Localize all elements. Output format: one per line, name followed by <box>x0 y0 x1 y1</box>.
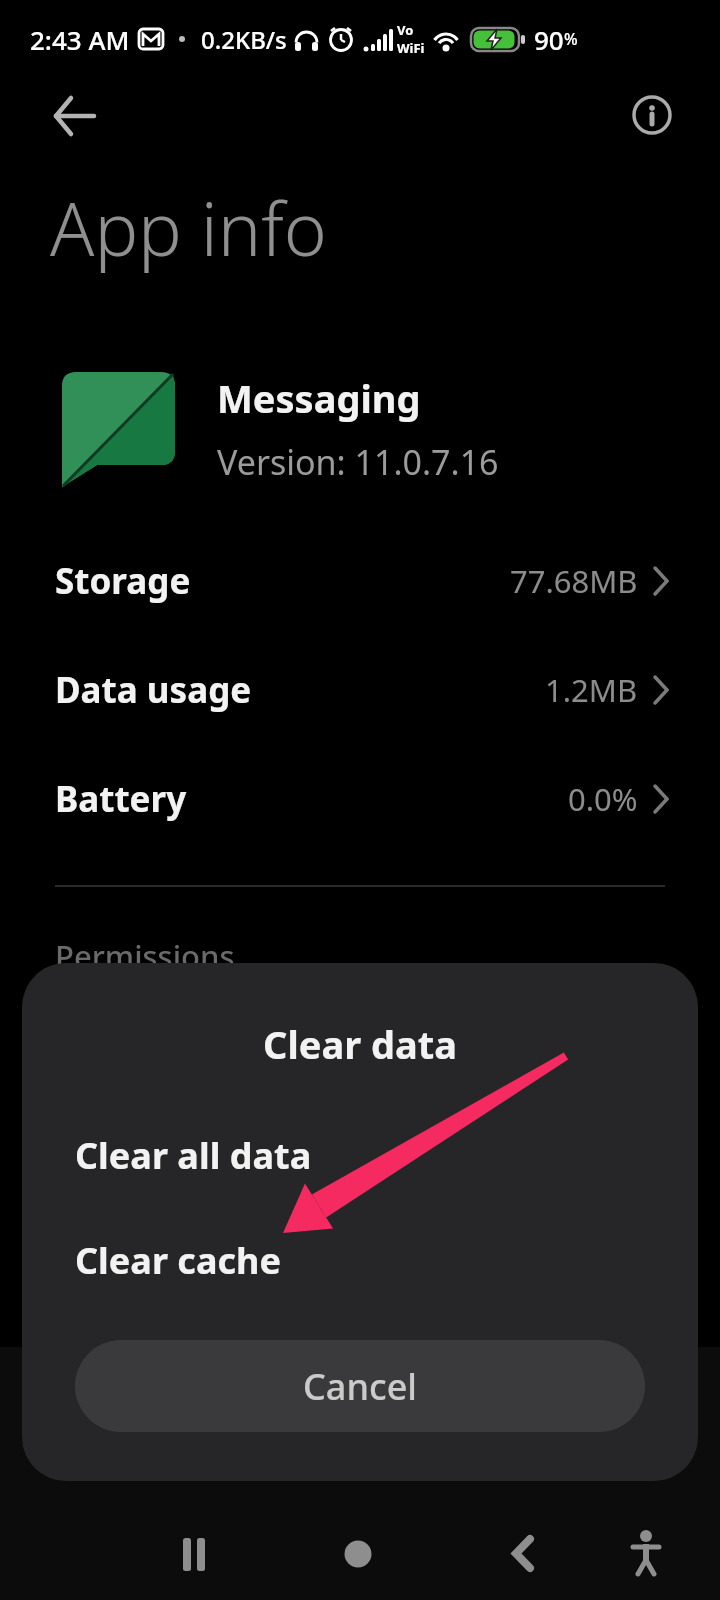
staticText: 90 <box>534 22 564 57</box>
staticText: App info <box>50 178 327 277</box>
staticText: 77.68MB <box>510 560 638 602</box>
button[interactable]: Permissions <box>55 935 235 977</box>
staticText: Vo <box>397 21 414 39</box>
staticText: WiFi <box>397 39 425 57</box>
button[interactable] <box>630 93 675 138</box>
staticText: 2:43 AM <box>30 22 130 57</box>
staticText: Clear data <box>263 1018 458 1070</box>
staticText: Version: 11.0.7.16 <box>217 439 499 485</box>
staticText: Data usage <box>55 666 252 714</box>
button[interactable] <box>40 86 110 146</box>
staticText: Clear cache <box>75 1236 281 1285</box>
button[interactable]: Data usage <box>0 635 720 745</box>
staticText: 1.2MB <box>545 669 638 711</box>
staticText: Storage <box>55 557 191 605</box>
button[interactable]: Clear cache <box>22 1213 698 1308</box>
button[interactable]: Cancel <box>75 1340 645 1432</box>
staticText: 0.0% <box>568 778 638 820</box>
staticText: Battery <box>55 775 187 823</box>
button[interactable]: Battery <box>0 744 720 854</box>
button[interactable] <box>616 1524 676 1584</box>
button[interactable]: Storage <box>0 526 720 636</box>
button[interactable]: Clear all data <box>22 1108 698 1203</box>
button[interactable] <box>166 1524 226 1584</box>
staticText: % <box>564 28 578 50</box>
staticText: Messaging <box>217 372 421 424</box>
button[interactable] <box>493 1524 553 1584</box>
staticText: Clear all data <box>75 1131 312 1180</box>
staticText: Cancel <box>303 1362 418 1411</box>
button[interactable] <box>328 1524 388 1584</box>
staticText: 0.2KB/s <box>201 23 287 56</box>
